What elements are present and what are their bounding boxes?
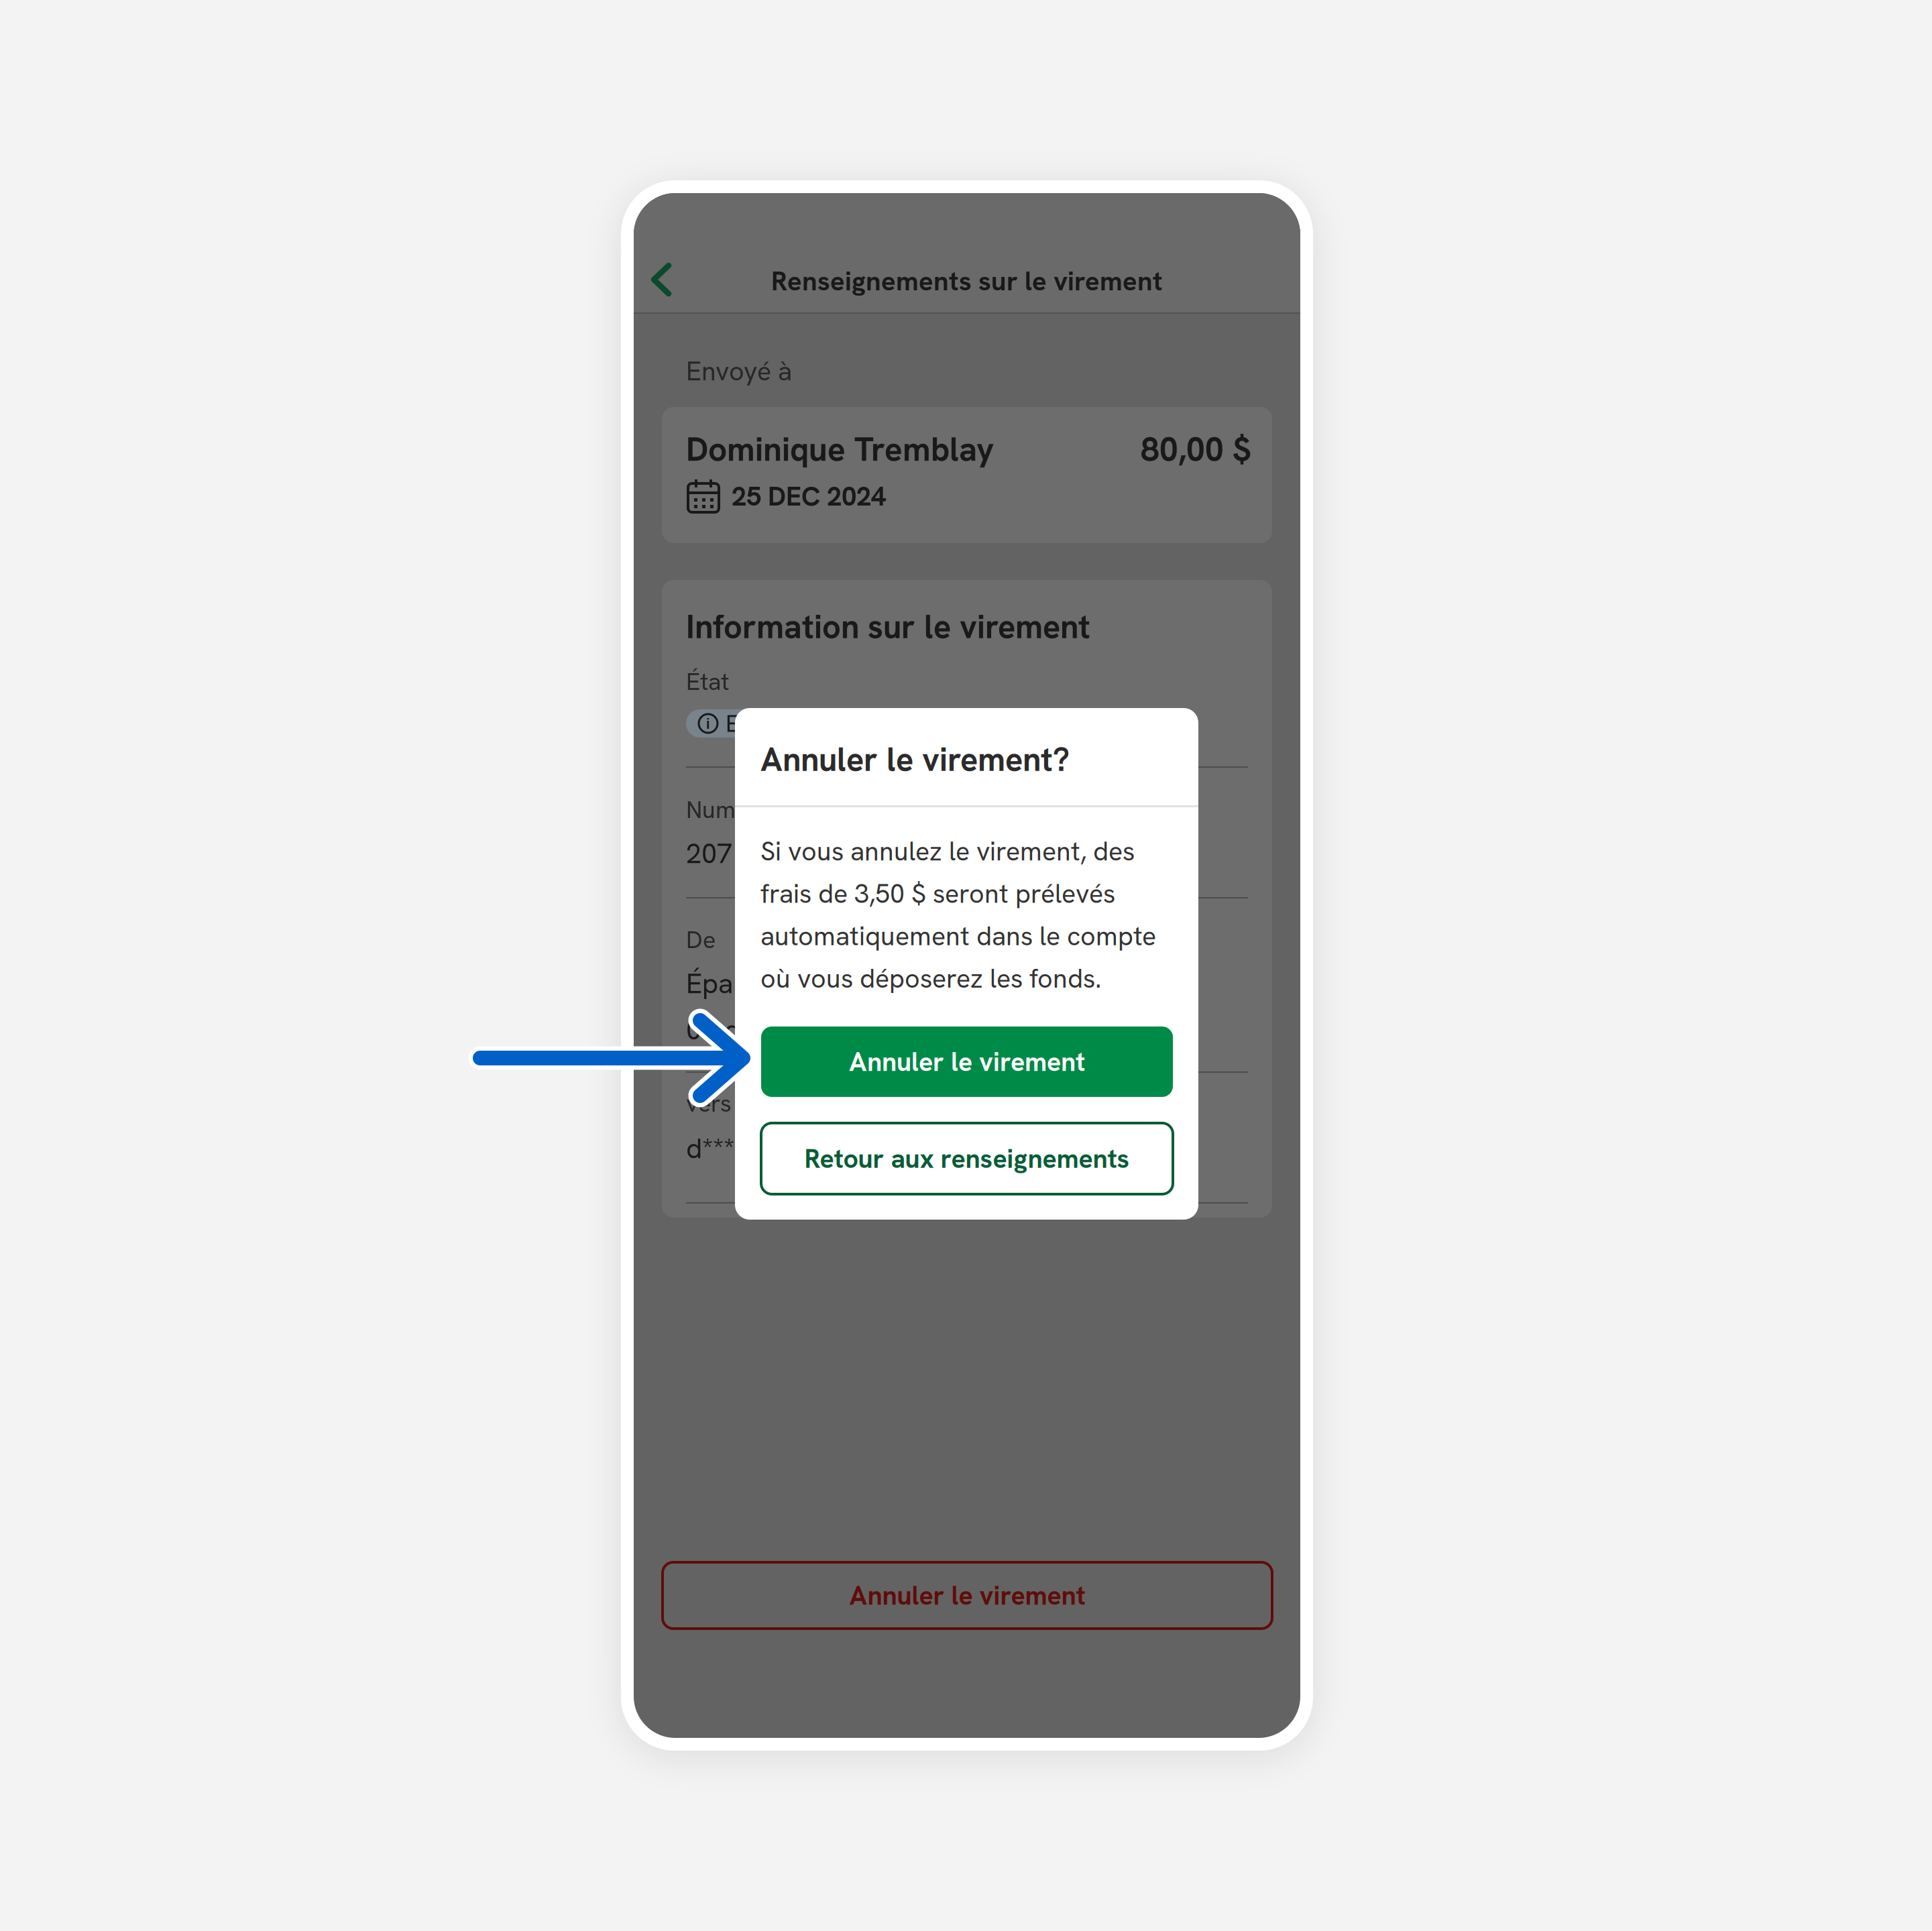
staticText: Épargne stable	[686, 965, 870, 1002]
button[interactable]: Annuler le virement	[761, 1027, 1173, 1097]
staticText: 25 DEC 2024	[732, 479, 886, 514]
staticText: Information sur le virement	[686, 605, 1090, 648]
staticText: Numéro de confirmation	[686, 794, 947, 825]
button[interactable]: Retour	[647, 255, 685, 304]
staticText: vers	[686, 1088, 732, 1119]
staticText: Envoyé à	[686, 354, 792, 388]
staticText: d**********	[686, 1130, 809, 1167]
staticText: 80,00 $	[1141, 428, 1251, 471]
staticText: Retour aux renseignements	[804, 1141, 1130, 1176]
staticText: i	[706, 714, 710, 733]
staticText: Annuler le virement	[849, 1578, 1085, 1613]
staticText: En cours	[726, 708, 820, 739]
staticText: 2071 4392 0023	[686, 835, 886, 872]
staticText: 00 d**********	[686, 1012, 848, 1048]
button[interactable]: Retour aux renseignements	[761, 1123, 1173, 1194]
staticText: Renseignements sur le virement	[771, 264, 1163, 298]
staticText: Si vous annulez le virement, des frais d…	[760, 834, 1156, 996]
staticText: Annuler le virement?	[760, 738, 1070, 781]
staticText: De	[686, 924, 716, 955]
staticText: Dominique Tremblay	[686, 428, 994, 471]
staticText: Annuler le virement	[849, 1045, 1085, 1079]
button[interactable]: Annuler le virement	[663, 1562, 1272, 1629]
staticText: État	[686, 666, 729, 697]
